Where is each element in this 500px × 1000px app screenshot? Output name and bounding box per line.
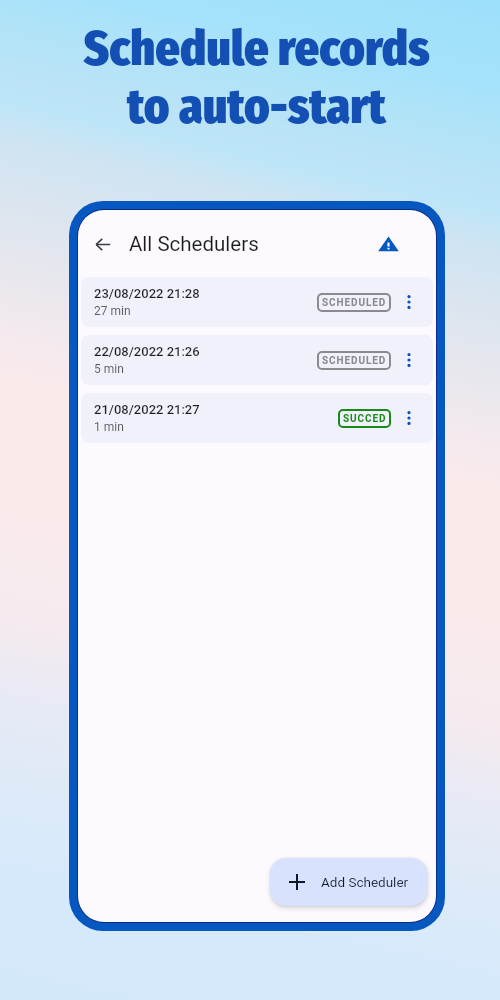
staticText: Add Scheduler <box>321 874 409 890</box>
button[interactable]: 22/08/2022 21:26 <box>81 335 433 385</box>
button[interactable]: More options <box>399 346 419 374</box>
button[interactable]: More options <box>399 404 419 432</box>
staticText: SCHEDULED <box>322 297 387 309</box>
staticText: All Schedulers <box>129 232 259 256</box>
button[interactable]: More options <box>399 288 419 316</box>
staticText: SCHEDULED <box>322 355 387 367</box>
staticText: 5 min <box>94 362 124 376</box>
button[interactable]: 21/08/2022 21:27 <box>81 393 433 443</box>
staticText: to auto-start <box>127 78 386 136</box>
staticText: Schedule records <box>83 20 430 78</box>
button[interactable]: Back <box>88 229 118 259</box>
button[interactable]: Warning <box>373 229 403 259</box>
button[interactable]: 23/08/2022 21:28 <box>81 277 433 327</box>
staticText: 21/08/2022 21:27 <box>94 402 200 417</box>
button[interactable]: Add Scheduler <box>270 858 427 906</box>
staticText: 22/08/2022 21:26 <box>94 344 200 359</box>
staticText: 1 min <box>94 420 124 434</box>
staticText: SUCCED <box>343 413 387 425</box>
staticText: 27 min <box>94 304 131 318</box>
staticText: 23/08/2022 21:28 <box>94 286 200 301</box>
